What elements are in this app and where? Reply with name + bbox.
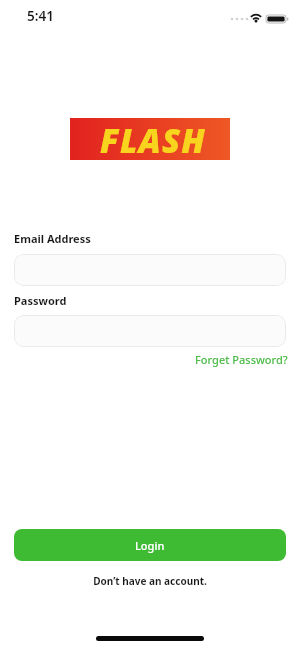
staticText: Forget Password? — [195, 352, 288, 367]
button[interactable]: Forget Password? — [195, 352, 288, 367]
staticText: Email Address — [14, 231, 91, 246]
button[interactable] — [14, 315, 286, 347]
button[interactable] — [14, 254, 286, 286]
staticText: Login — [135, 538, 165, 553]
button[interactable]: Don’t have an account. — [0, 574, 300, 588]
button[interactable]: Login — [14, 529, 286, 561]
staticText: Don’t have an account. — [93, 574, 207, 588]
staticText: FLASH — [100, 118, 207, 160]
staticText: 5:41 — [27, 7, 54, 25]
staticText: Password — [14, 293, 67, 308]
